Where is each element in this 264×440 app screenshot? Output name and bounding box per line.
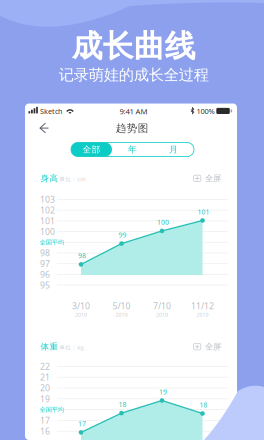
staticText: 趋势图 [116,122,149,135]
staticText: Sketch [40,106,62,116]
staticText: 2019 [75,311,87,318]
staticText: 102 [40,204,55,216]
staticText: 103 [40,194,55,205]
staticText: 全国平均 [40,238,64,246]
staticText: 99 [118,230,126,239]
staticText: 3/10 [72,300,90,312]
staticText: 100% [196,106,214,116]
staticText: 17 [40,414,50,426]
staticText: 单位：kg [59,343,84,351]
staticText: 98 [40,247,50,259]
staticText: 19 [40,393,50,405]
staticText: 2019 [156,311,168,318]
staticText: 记录萌娃的成长全过程 [59,65,209,84]
button[interactable]: 返回 [0,0,26,21]
staticText: 19 [159,387,167,396]
staticText: 101 [197,207,209,216]
staticText: 全屏 [205,173,221,184]
staticText: 22 [40,360,50,372]
staticText: 7/10 [153,300,171,312]
staticText: 2019 [115,311,127,318]
staticText: 98 [78,251,86,260]
staticText: 21 [40,371,50,383]
staticText: 全国平均 [40,406,64,414]
staticText: 单位：cm [59,175,85,183]
staticText: 月 [169,144,178,155]
staticText: 95 [40,279,50,291]
staticText: 100 [40,226,55,237]
staticText: 97 [40,258,50,270]
staticText: 全屏 [205,341,221,352]
staticText: 18 [118,400,126,409]
staticText: 体重 [40,341,58,352]
staticText: 16 [40,425,50,437]
staticText: 成长曲线 [72,27,196,65]
staticText: 17 [78,419,86,428]
staticText: 年 [128,144,137,155]
staticText: 20 [40,382,50,394]
staticText: 96 [40,268,50,280]
staticText: 18 [199,400,207,409]
staticText: 5/10 [112,300,130,312]
staticText: 2019 [196,311,208,318]
staticText: 身高 [40,173,58,184]
staticText: 9:41 AM [119,106,147,116]
staticText: 11/12 [191,300,214,312]
staticText: 101 [40,215,55,227]
staticText: 全部 [82,144,100,155]
staticText: 100 [157,217,169,227]
